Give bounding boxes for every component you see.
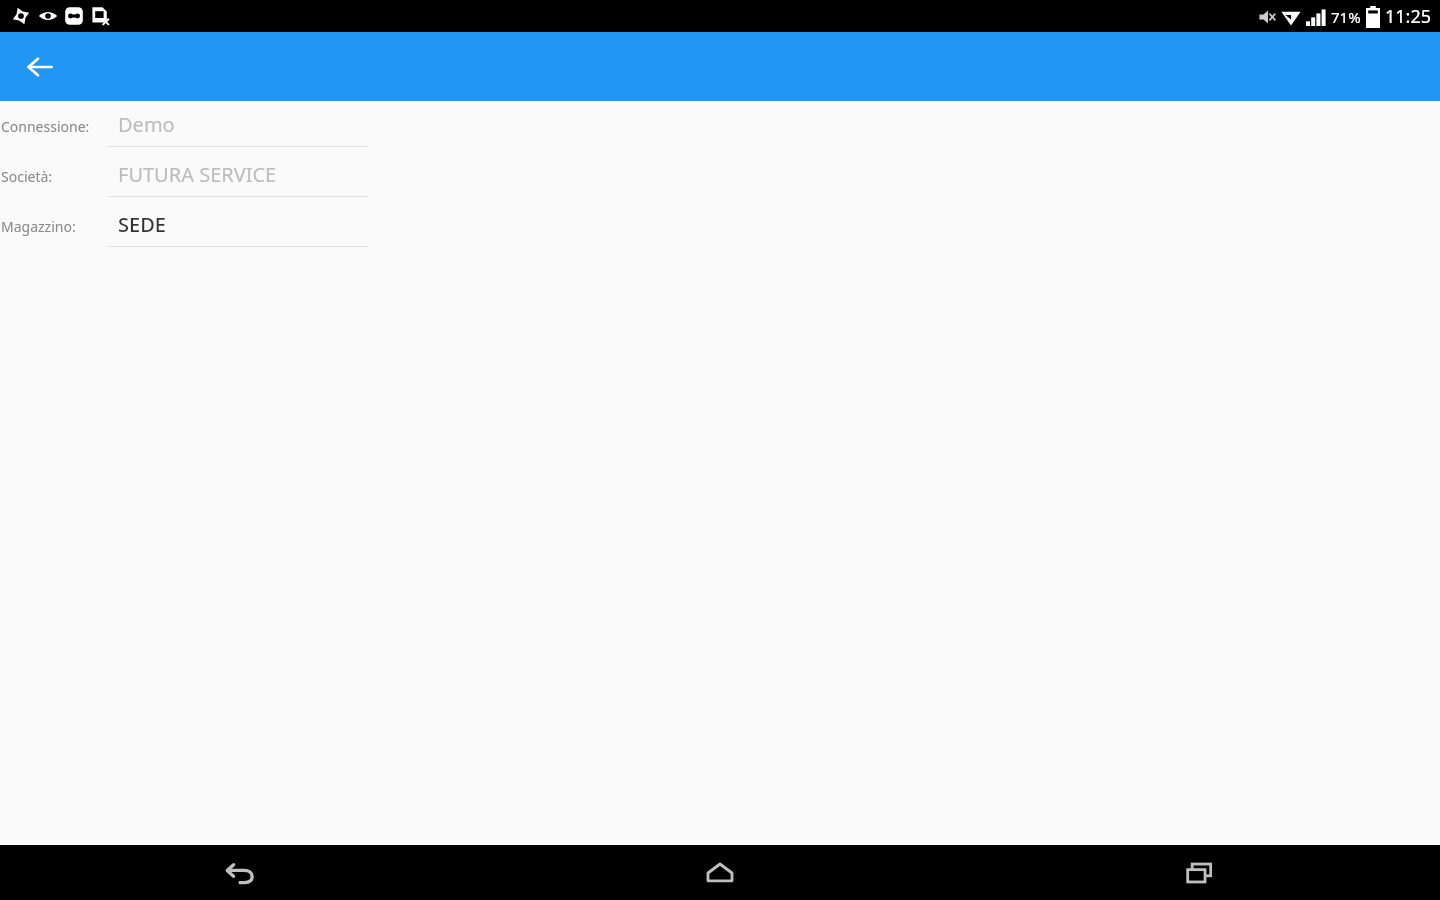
staticText: SEDE — [118, 211, 166, 238]
staticText: Connessione: — [1, 117, 90, 136]
staticText: Magazzino: — [1, 217, 76, 236]
staticText: Società: — [1, 167, 53, 186]
button[interactable]: Recent apps — [960, 845, 1440, 900]
staticText: Demo — [118, 111, 175, 138]
button[interactable]: Back — [14, 41, 66, 93]
button[interactable]: Società: — [0, 158, 1440, 208]
staticText: 11:25 — [1385, 4, 1432, 29]
button[interactable]: Magazzino: — [0, 208, 1440, 258]
button[interactable]: Back — [0, 845, 480, 900]
button[interactable]: Connessione: — [0, 108, 1440, 158]
staticText: 71% — [1331, 7, 1361, 27]
button[interactable]: Home — [480, 845, 960, 900]
staticText: FUTURA SERVICE — [118, 161, 277, 188]
